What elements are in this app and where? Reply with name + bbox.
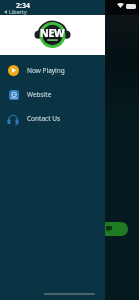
button[interactable]: Chat on WhatsApp (100, 222, 128, 236)
staticText: Now Playing (27, 66, 65, 75)
button[interactable]: Now Playing (0, 58, 105, 82)
button[interactable]: Contact Us (0, 106, 105, 130)
staticText: Contact Us (27, 114, 61, 123)
staticText: Website (27, 90, 52, 99)
staticText: NEW (40, 26, 65, 40)
button[interactable]: Website (0, 82, 105, 106)
staticText: 2:34 (16, 1, 30, 11)
staticText: Liberty (9, 8, 27, 15)
